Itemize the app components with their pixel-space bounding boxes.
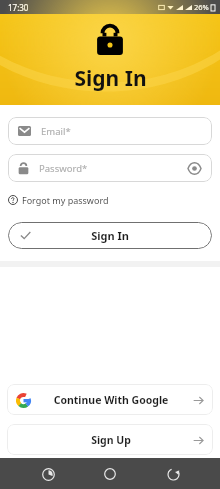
staticText: 17:30 — [8, 2, 29, 13]
button[interactable]: Password* — [8, 154, 212, 182]
button[interactable]: Back — [158, 459, 188, 489]
button[interactable]: Email* — [8, 117, 212, 145]
button[interactable]: Sign Up — [7, 424, 213, 455]
button[interactable]: Show password — [186, 160, 202, 176]
button[interactable]: Forgot my password — [8, 192, 109, 208]
button[interactable]: Home — [95, 459, 125, 489]
staticText: Forgot my password — [22, 194, 109, 206]
button[interactable]: Recent apps — [33, 459, 63, 489]
button[interactable]: Sign In — [8, 222, 212, 249]
staticText: 26% — [194, 2, 209, 12]
staticText: Sign In — [74, 64, 147, 93]
staticText: Email* — [41, 125, 202, 138]
staticText: Continue With Google — [31, 393, 191, 407]
staticText: Sign Up — [31, 433, 191, 447]
staticText: Password* — [39, 162, 186, 175]
button[interactable]: Continue With Google — [7, 384, 213, 415]
staticText: Sign In — [31, 228, 189, 243]
